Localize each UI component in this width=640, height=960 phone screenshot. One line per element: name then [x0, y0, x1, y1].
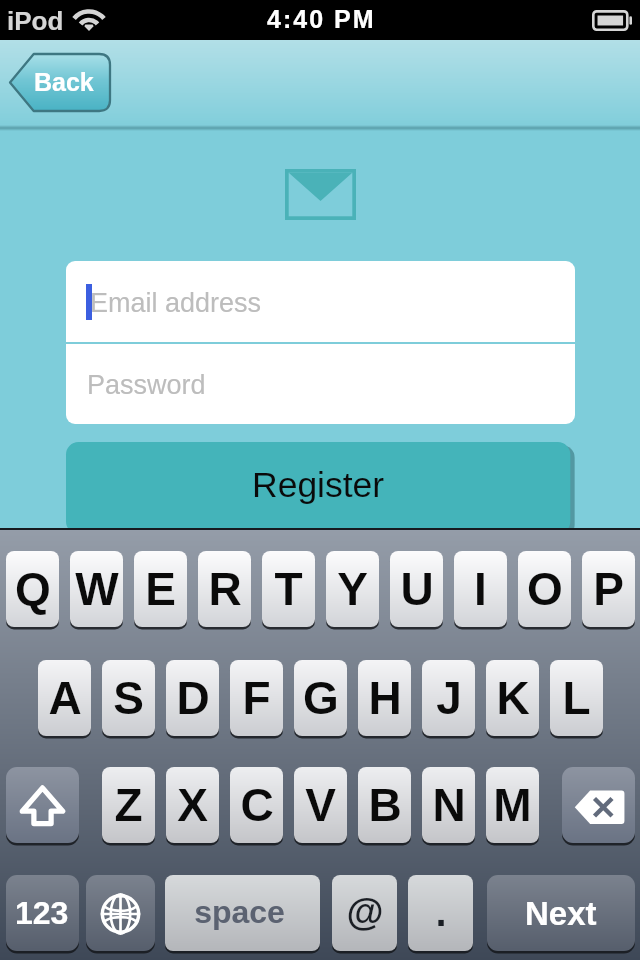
- staticText: M: [493, 779, 532, 830]
- staticText: H: [368, 672, 402, 723]
- button[interactable]: Shift: [6, 767, 79, 843]
- button[interactable]: Register: [66, 442, 570, 534]
- staticText: R: [208, 563, 242, 614]
- button[interactable]: Y: [326, 551, 379, 627]
- button[interactable]: Change keyboard: [86, 875, 155, 951]
- button[interactable]: .: [408, 875, 473, 951]
- staticText: B: [368, 779, 402, 830]
- staticText: Q: [15, 563, 51, 614]
- button[interactable]: Z: [102, 767, 155, 843]
- staticText: A: [48, 672, 82, 723]
- staticText: iPod: [7, 6, 64, 35]
- staticText: N: [432, 779, 466, 830]
- staticText: T: [274, 563, 303, 614]
- button[interactable]: R: [198, 551, 251, 627]
- button[interactable]: Email address: [66, 261, 575, 342]
- button[interactable]: Backspace: [562, 767, 635, 843]
- staticText: E: [145, 563, 176, 614]
- button[interactable]: T: [262, 551, 315, 627]
- staticText: Email address: [90, 288, 262, 318]
- staticText: G: [303, 672, 339, 723]
- staticText: L: [562, 672, 591, 723]
- button[interactable]: G: [294, 660, 347, 736]
- button[interactable]: V: [294, 767, 347, 843]
- staticText: 4:40 PM: [267, 5, 376, 33]
- staticText: Password: [87, 370, 206, 400]
- staticText: J: [436, 672, 462, 723]
- staticText: I: [474, 563, 487, 614]
- button[interactable]: space: [165, 875, 320, 951]
- button[interactable]: C: [230, 767, 283, 843]
- staticText: D: [176, 672, 210, 723]
- button[interactable]: H: [358, 660, 411, 736]
- button[interactable]: D: [166, 660, 219, 736]
- staticText: Next: [525, 895, 597, 932]
- staticText: O: [527, 563, 563, 614]
- button[interactable]: @: [332, 875, 397, 951]
- button[interactable]: I: [454, 551, 507, 627]
- button[interactable]: P: [582, 551, 635, 627]
- button[interactable]: A: [38, 660, 91, 736]
- button[interactable]: M: [486, 767, 539, 843]
- staticText: @: [346, 891, 384, 933]
- staticText: 123: [15, 895, 69, 931]
- staticText: V: [305, 779, 336, 830]
- button[interactable]: X: [166, 767, 219, 843]
- button[interactable]: Password: [66, 344, 575, 424]
- staticText: P: [593, 563, 624, 614]
- staticText: W: [75, 563, 119, 614]
- staticText: .: [435, 890, 447, 935]
- button[interactable]: L: [550, 660, 603, 736]
- button[interactable]: 123: [6, 875, 79, 951]
- button[interactable]: K: [486, 660, 539, 736]
- staticText: Z: [114, 779, 143, 830]
- staticText: Back: [34, 68, 94, 96]
- button[interactable]: Back: [10, 54, 110, 111]
- staticText: K: [496, 672, 530, 723]
- staticText: Register: [252, 465, 385, 505]
- staticText: F: [242, 672, 271, 723]
- button[interactable]: S: [102, 660, 155, 736]
- button[interactable]: B: [358, 767, 411, 843]
- button[interactable]: Q: [6, 551, 59, 627]
- button[interactable]: F: [230, 660, 283, 736]
- staticText: Y: [337, 563, 368, 614]
- staticText: space: [194, 894, 285, 930]
- button[interactable]: N: [422, 767, 475, 843]
- button[interactable]: W: [70, 551, 123, 627]
- button[interactable]: O: [518, 551, 571, 627]
- button[interactable]: J: [422, 660, 475, 736]
- button[interactable]: E: [134, 551, 187, 627]
- button[interactable]: Next: [487, 875, 635, 951]
- staticText: S: [113, 672, 144, 723]
- staticText: C: [240, 779, 274, 830]
- button[interactable]: U: [390, 551, 443, 627]
- staticText: U: [400, 563, 434, 614]
- staticText: X: [177, 779, 208, 830]
